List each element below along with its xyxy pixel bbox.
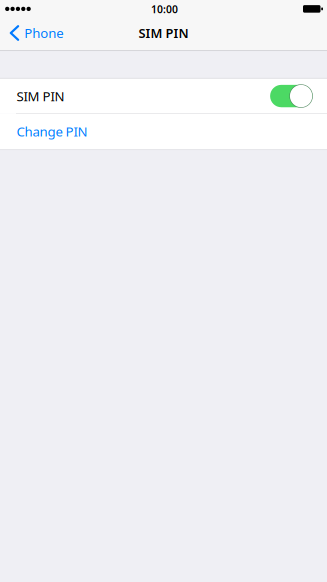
button[interactable]: Phone [0, 20, 72, 46]
staticText: SIM PIN [138, 24, 188, 42]
button[interactable]: Change PIN [0, 114, 327, 149]
staticText: Phone [24, 24, 63, 42]
staticText: Change PIN [16, 122, 87, 140]
staticText: SIM PIN [16, 87, 64, 105]
button[interactable]: SIM PIN [0, 79, 327, 113]
staticText: 10:00 [151, 2, 178, 16]
